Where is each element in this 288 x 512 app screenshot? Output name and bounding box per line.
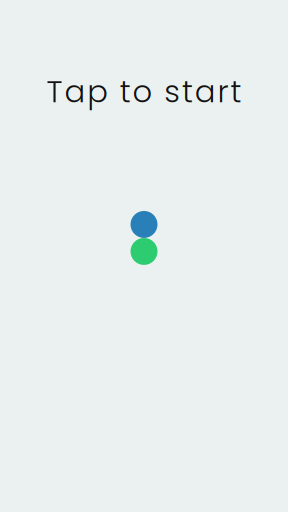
staticText: Tap to start [47,70,241,113]
button[interactable]: Tap to start [0,0,288,512]
